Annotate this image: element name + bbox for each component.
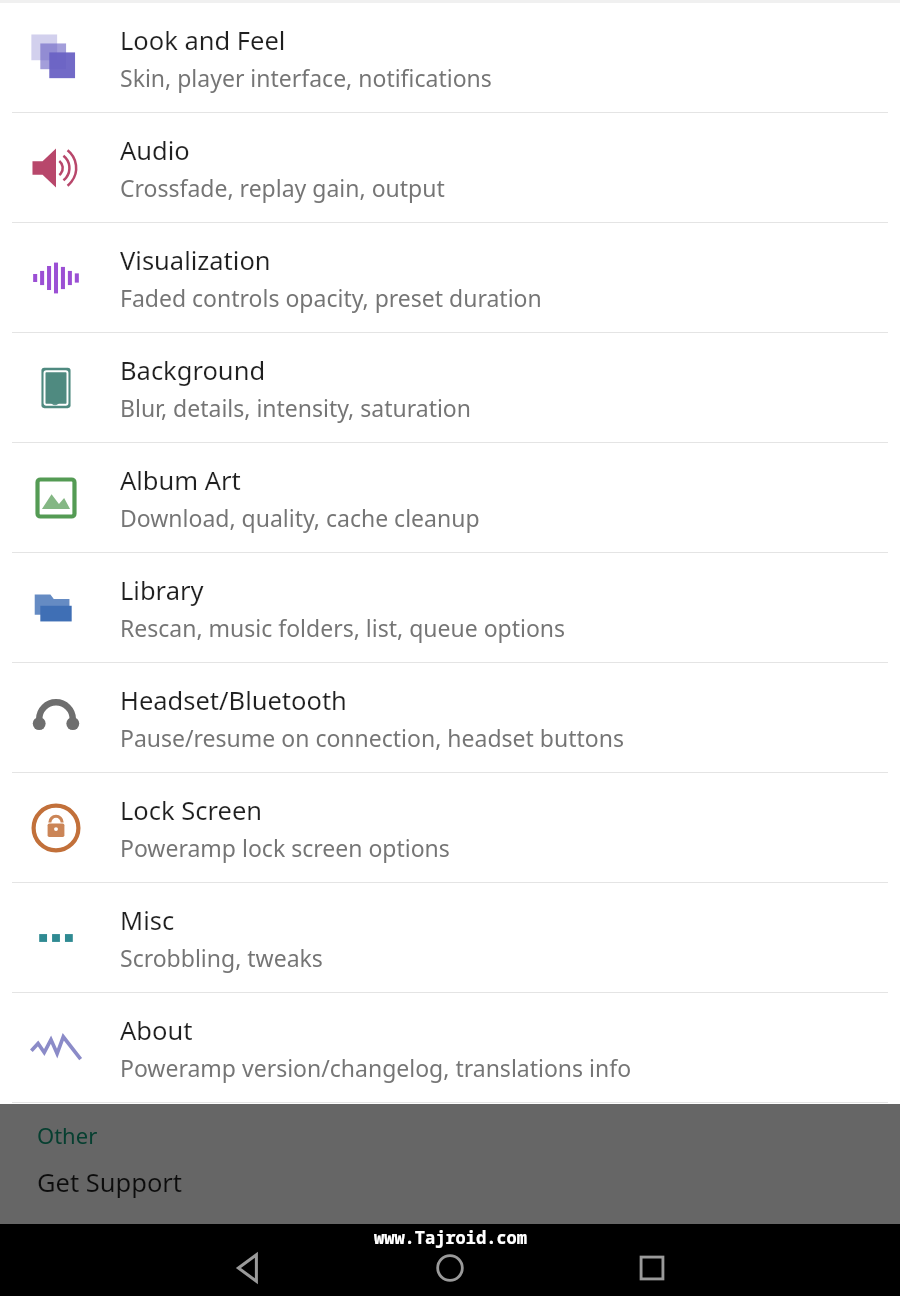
staticText: Look and Feel xyxy=(120,23,286,58)
staticText: Visualization xyxy=(120,243,271,278)
button[interactable]: Misc xyxy=(0,883,900,993)
button[interactable]: Home xyxy=(422,1240,478,1296)
staticText: Pause/resume on connection, headset butt… xyxy=(120,722,624,753)
staticText: Crossfade, replay gain, output xyxy=(120,172,445,203)
button[interactable]: Lock Screen xyxy=(0,773,900,883)
staticText: Poweramp version/changelog, translations… xyxy=(120,1052,632,1083)
staticText: Skin, player interface, notifications xyxy=(120,62,492,93)
button[interactable]: Look and Feel xyxy=(0,3,900,113)
button[interactable]: Background xyxy=(0,333,900,443)
button[interactable]: Recent apps xyxy=(624,1240,680,1296)
button[interactable]: Back xyxy=(220,1240,276,1296)
staticText: Audio xyxy=(120,133,190,168)
button[interactable]: Get Support xyxy=(0,1159,900,1219)
staticText: Faded controls opacity, preset duration xyxy=(120,282,542,313)
staticText: Get Support xyxy=(37,1165,183,1200)
staticText: Poweramp lock screen options xyxy=(120,832,450,863)
staticText: Headset/Bluetooth xyxy=(120,683,347,718)
staticText: Scrobbling, tweaks xyxy=(120,942,323,973)
staticText: Other xyxy=(37,1120,98,1150)
staticText: Album Art xyxy=(120,463,241,498)
button[interactable]: Visualization xyxy=(0,223,900,333)
button[interactable]: Album Art xyxy=(0,443,900,553)
staticText: Blur, details, intensity, saturation xyxy=(120,392,472,423)
staticText: Download, quality, cache cleanup xyxy=(120,502,480,533)
button[interactable]: Library xyxy=(0,553,900,663)
button[interactable]: About xyxy=(0,993,900,1103)
staticText: Misc xyxy=(120,903,175,938)
button[interactable]: Headset/Bluetooth xyxy=(0,663,900,773)
staticText: About xyxy=(120,1013,193,1048)
staticText: Background xyxy=(120,353,266,388)
staticText: Library xyxy=(120,573,204,608)
staticText: Lock Screen xyxy=(120,793,263,828)
button[interactable]: Audio xyxy=(0,113,900,223)
staticText: www.Tajroid.com xyxy=(374,1226,527,1249)
staticText: Rescan, music folders, list, queue optio… xyxy=(120,612,566,643)
